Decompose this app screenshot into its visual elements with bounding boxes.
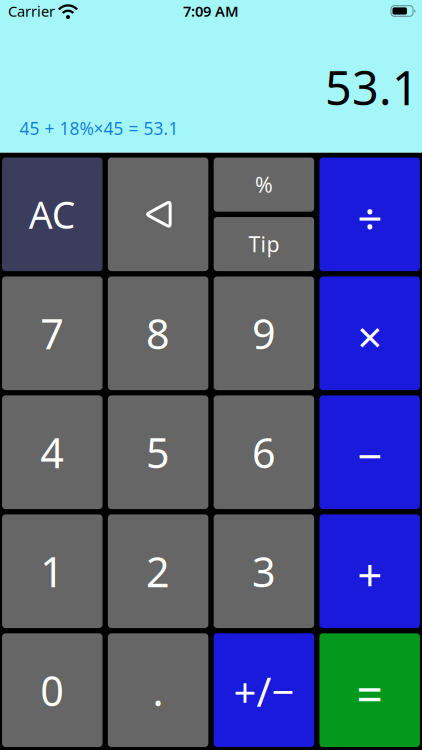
button[interactable]: = xyxy=(319,633,420,747)
staticText: Carrier xyxy=(8,1,55,21)
staticText: 3 xyxy=(252,544,276,599)
button[interactable]: 3 xyxy=(214,514,314,628)
button[interactable]: 5 xyxy=(108,395,208,509)
staticText: − xyxy=(357,426,382,484)
button[interactable]: % xyxy=(214,157,314,212)
staticText: × xyxy=(357,307,382,365)
staticText: 7:09 AM xyxy=(183,1,239,21)
button[interactable]: + xyxy=(319,514,420,628)
staticText: 0 xyxy=(40,663,64,718)
button[interactable]: AC xyxy=(2,157,103,271)
button[interactable]: 9 xyxy=(214,276,314,390)
button[interactable]: 6 xyxy=(214,395,314,509)
button[interactable]: Backspace xyxy=(108,157,208,271)
staticText: 53.1 xyxy=(325,56,419,118)
staticText: % xyxy=(255,170,273,199)
staticText: 6 xyxy=(252,425,276,480)
button[interactable]: − xyxy=(319,395,420,509)
button[interactable]: 2 xyxy=(108,514,208,628)
staticText: 1 xyxy=(40,544,64,599)
button[interactable]: ÷ xyxy=(319,157,420,271)
staticText: . xyxy=(153,663,164,718)
button[interactable]: +/− xyxy=(214,633,314,747)
staticText: AC xyxy=(29,189,76,239)
button[interactable]: 4 xyxy=(2,395,103,509)
staticText: 7 xyxy=(40,306,64,361)
staticText: + xyxy=(357,545,382,603)
staticText: 4 xyxy=(40,425,64,480)
button[interactable]: . xyxy=(108,633,208,747)
staticText: 9 xyxy=(252,306,276,361)
button[interactable]: 1 xyxy=(2,514,103,628)
staticText: 8 xyxy=(146,306,170,361)
button[interactable]: 8 xyxy=(108,276,208,390)
button[interactable]: Tip xyxy=(214,217,314,271)
button[interactable]: 0 xyxy=(2,633,103,747)
staticText: +/− xyxy=(233,665,294,718)
staticText: 2 xyxy=(146,544,170,599)
staticText: = xyxy=(356,662,383,724)
button[interactable]: × xyxy=(319,276,420,390)
staticText: Tip xyxy=(248,230,279,258)
staticText: 45 + 18%×45 = 53.1 xyxy=(19,117,178,140)
staticText: ÷ xyxy=(357,188,382,246)
button[interactable]: 7 xyxy=(2,276,103,390)
staticText: 5 xyxy=(146,425,170,480)
